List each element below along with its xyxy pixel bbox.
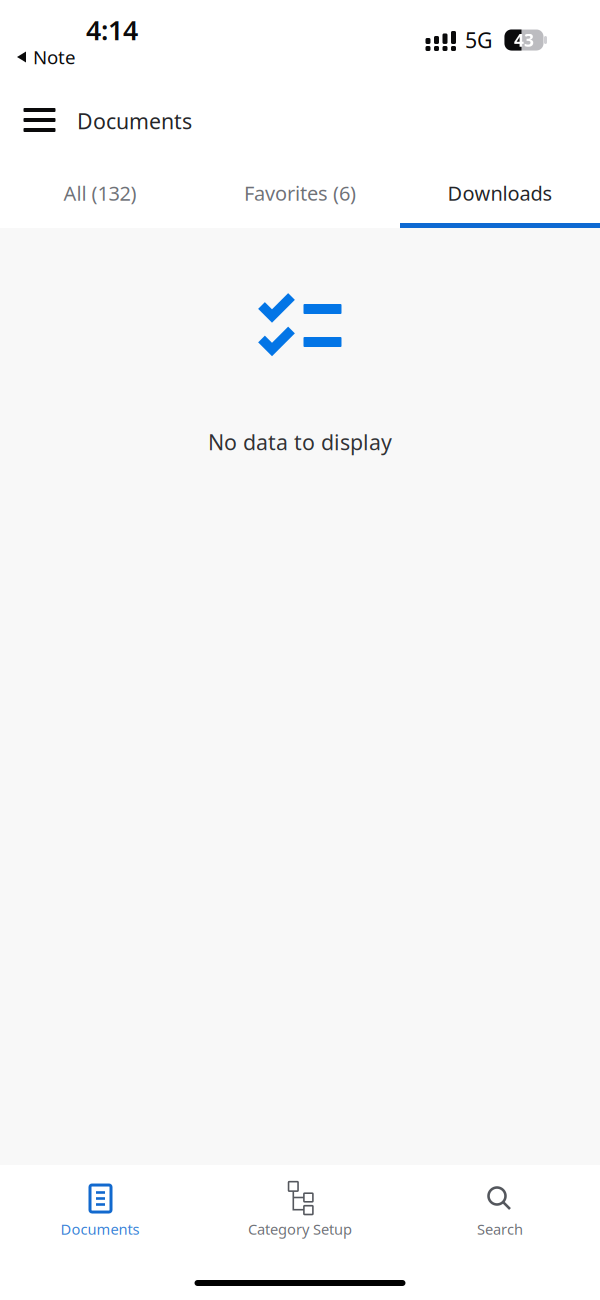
staticText: Favorites (6) xyxy=(244,180,356,206)
staticText: 5G xyxy=(465,26,493,54)
button[interactable]: Menu xyxy=(11,92,67,148)
button[interactable]: Category Setup xyxy=(200,1165,400,1247)
staticText: Documents xyxy=(60,1219,139,1239)
staticText: Downloads xyxy=(447,180,552,206)
button[interactable]: All (132) xyxy=(0,162,200,228)
button[interactable]: Downloads xyxy=(400,162,600,228)
button[interactable]: Documents xyxy=(0,1165,200,1247)
staticText: Search xyxy=(477,1219,523,1239)
button[interactable]: Search xyxy=(400,1165,600,1247)
staticText: Category Setup xyxy=(248,1219,352,1239)
staticText: No data to display xyxy=(208,428,392,456)
staticText: 4:14 xyxy=(86,12,138,48)
staticText: All (132) xyxy=(63,180,136,206)
button[interactable]: Favorites (6) xyxy=(200,162,400,228)
button[interactable]: Note xyxy=(17,46,89,68)
staticText: Note xyxy=(33,45,76,69)
staticText: 43 xyxy=(514,28,534,51)
staticText: Documents xyxy=(77,107,192,135)
